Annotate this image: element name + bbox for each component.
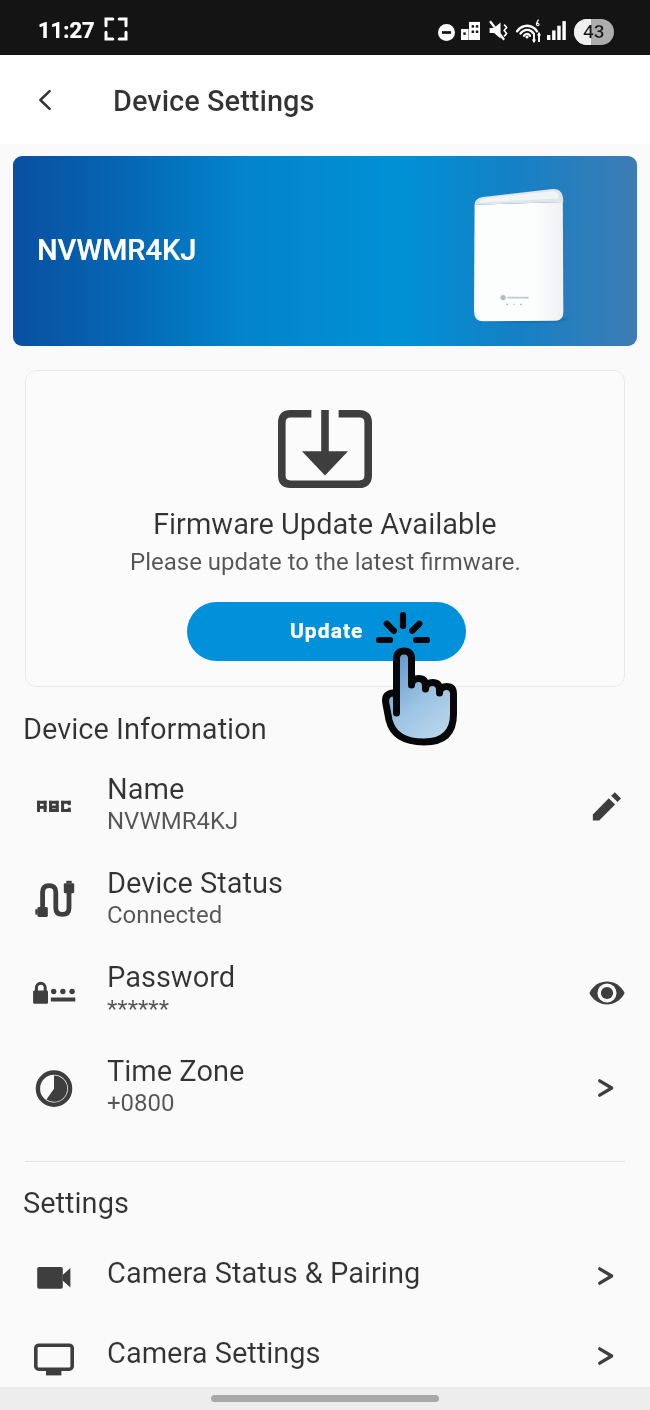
staticText: Firmware Update Available <box>153 507 497 541</box>
staticText: 11:27 <box>38 18 95 44</box>
button[interactable]: Device Status <box>0 850 650 944</box>
staticText: Camera Status & Pairing <box>107 1256 584 1290</box>
staticText: 43 <box>583 20 605 42</box>
button[interactable]: NVWMR4KJ <box>13 156 637 346</box>
staticText: Settings <box>23 1186 129 1220</box>
staticText: Time Zone <box>107 1054 245 1088</box>
staticText: Device Status <box>107 866 283 900</box>
button[interactable]: Back <box>21 76 69 124</box>
button[interactable]: Update <box>187 602 466 661</box>
button[interactable]: Show password <box>584 968 630 1014</box>
staticText: Camera Settings <box>107 1336 584 1370</box>
button[interactable]: Time Zone <box>0 1038 650 1132</box>
button[interactable]: Camera Status & Pairing <box>0 1233 650 1313</box>
staticText: ****** <box>107 995 170 1023</box>
staticText: Name <box>107 772 185 806</box>
button[interactable]: Edit name <box>584 780 630 826</box>
staticText: +0800 <box>107 1089 175 1117</box>
staticText: Connected <box>107 901 223 929</box>
staticText: Device Information <box>23 712 267 746</box>
staticText: Password <box>107 960 236 994</box>
staticText: NVWMR4KJ <box>107 807 239 835</box>
button[interactable]: Camera Settings <box>0 1313 650 1393</box>
staticText: Update <box>290 619 364 644</box>
staticText: Device Settings <box>113 84 315 118</box>
staticText: NVWMR4KJ <box>37 233 197 267</box>
button[interactable]: Password <box>0 944 650 1038</box>
button[interactable]: Name <box>0 756 650 850</box>
staticText: Please update to the latest firmware. <box>130 548 521 576</box>
